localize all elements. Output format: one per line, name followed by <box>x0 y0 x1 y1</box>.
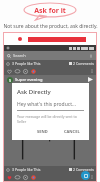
other: Search <box>7 54 11 58</box>
staticText: S <box>9 78 12 83</box>
staticText: 2 Comments <box>73 167 94 172</box>
button[interactable]: Search <box>7 51 93 60</box>
button[interactable]: Like <box>6 174 12 180</box>
button[interactable]: Ask for it <box>24 3 76 20</box>
staticText: Your message will be directly sent to Se… <box>17 114 84 124</box>
button[interactable]: Share <box>22 68 28 74</box>
button[interactable]: S <box>7 75 93 84</box>
staticText: Ask Directly <box>17 88 51 96</box>
button[interactable]: Compose <box>81 171 90 180</box>
staticText: Hey what's this product... <box>17 101 77 108</box>
staticText: Super evening <box>15 77 43 82</box>
other: More options <box>89 54 93 58</box>
staticText: Ask for it <box>34 6 66 16</box>
button[interactable]: Like <box>6 68 12 74</box>
staticText: 3 People like This <box>12 167 41 172</box>
other: More <box>90 69 94 73</box>
staticText: 3 People like This <box>12 61 41 66</box>
staticText: CANCEL <box>64 129 80 134</box>
staticText: Not sure about the product, ask directly… <box>3 23 98 30</box>
button[interactable]: Open in browser <box>30 68 36 74</box>
button[interactable]: 3 People like This <box>6 60 94 67</box>
button[interactable]: CANCEL <box>60 128 84 135</box>
button[interactable]: 3 People like This <box>6 166 94 173</box>
staticText: SEND <box>37 129 48 134</box>
button[interactable]: Open in browser <box>30 174 36 180</box>
staticText: Search <box>13 53 26 58</box>
staticText: 2 Comments <box>73 61 94 66</box>
button[interactable]: Share <box>22 174 28 180</box>
button[interactable]: SEND <box>33 128 52 135</box>
other: More <box>90 175 94 179</box>
other: Send <box>88 77 93 82</box>
button[interactable]: Comment <box>14 68 20 74</box>
button[interactable]: Comment <box>14 174 20 180</box>
